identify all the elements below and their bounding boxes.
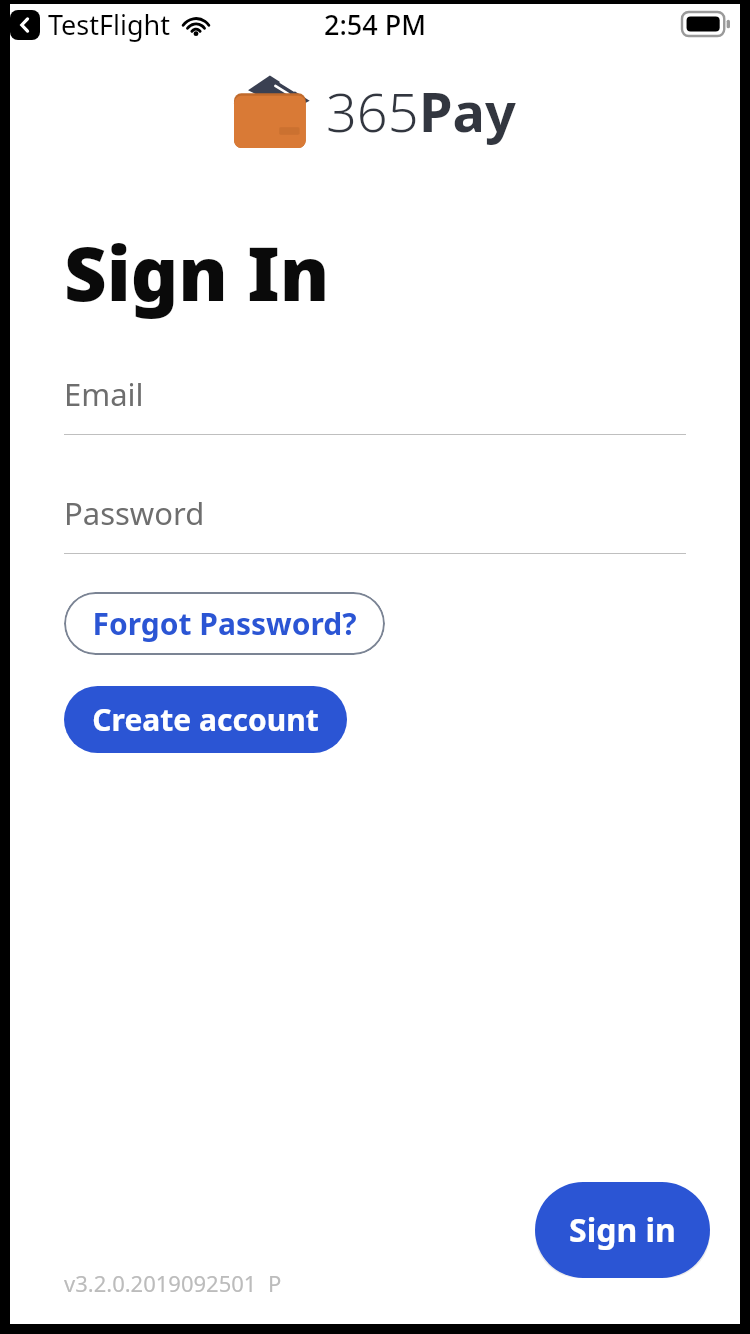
button[interactable]: Email (64, 373, 686, 435)
button[interactable]: Back to TestFlight (10, 10, 40, 40)
staticText: Forgot Password? (92, 603, 357, 644)
button[interactable]: Password (64, 492, 686, 554)
staticText: Email (64, 373, 144, 415)
staticText: Password (64, 492, 205, 534)
staticText: 2:54 PM (324, 6, 426, 43)
button[interactable]: Sign in (535, 1182, 710, 1278)
staticText: v3.2.0.2019092501 P (64, 1268, 282, 1298)
button[interactable]: Forgot Password? (64, 592, 385, 655)
staticText: Sign In (64, 222, 330, 323)
button[interactable]: Create account (64, 686, 347, 753)
staticText: Pay (419, 74, 516, 148)
staticText: Create account (92, 699, 319, 740)
staticText: Sign in (569, 1208, 676, 1252)
staticText: TestFlight (48, 6, 171, 43)
staticText: 365 (326, 74, 419, 148)
